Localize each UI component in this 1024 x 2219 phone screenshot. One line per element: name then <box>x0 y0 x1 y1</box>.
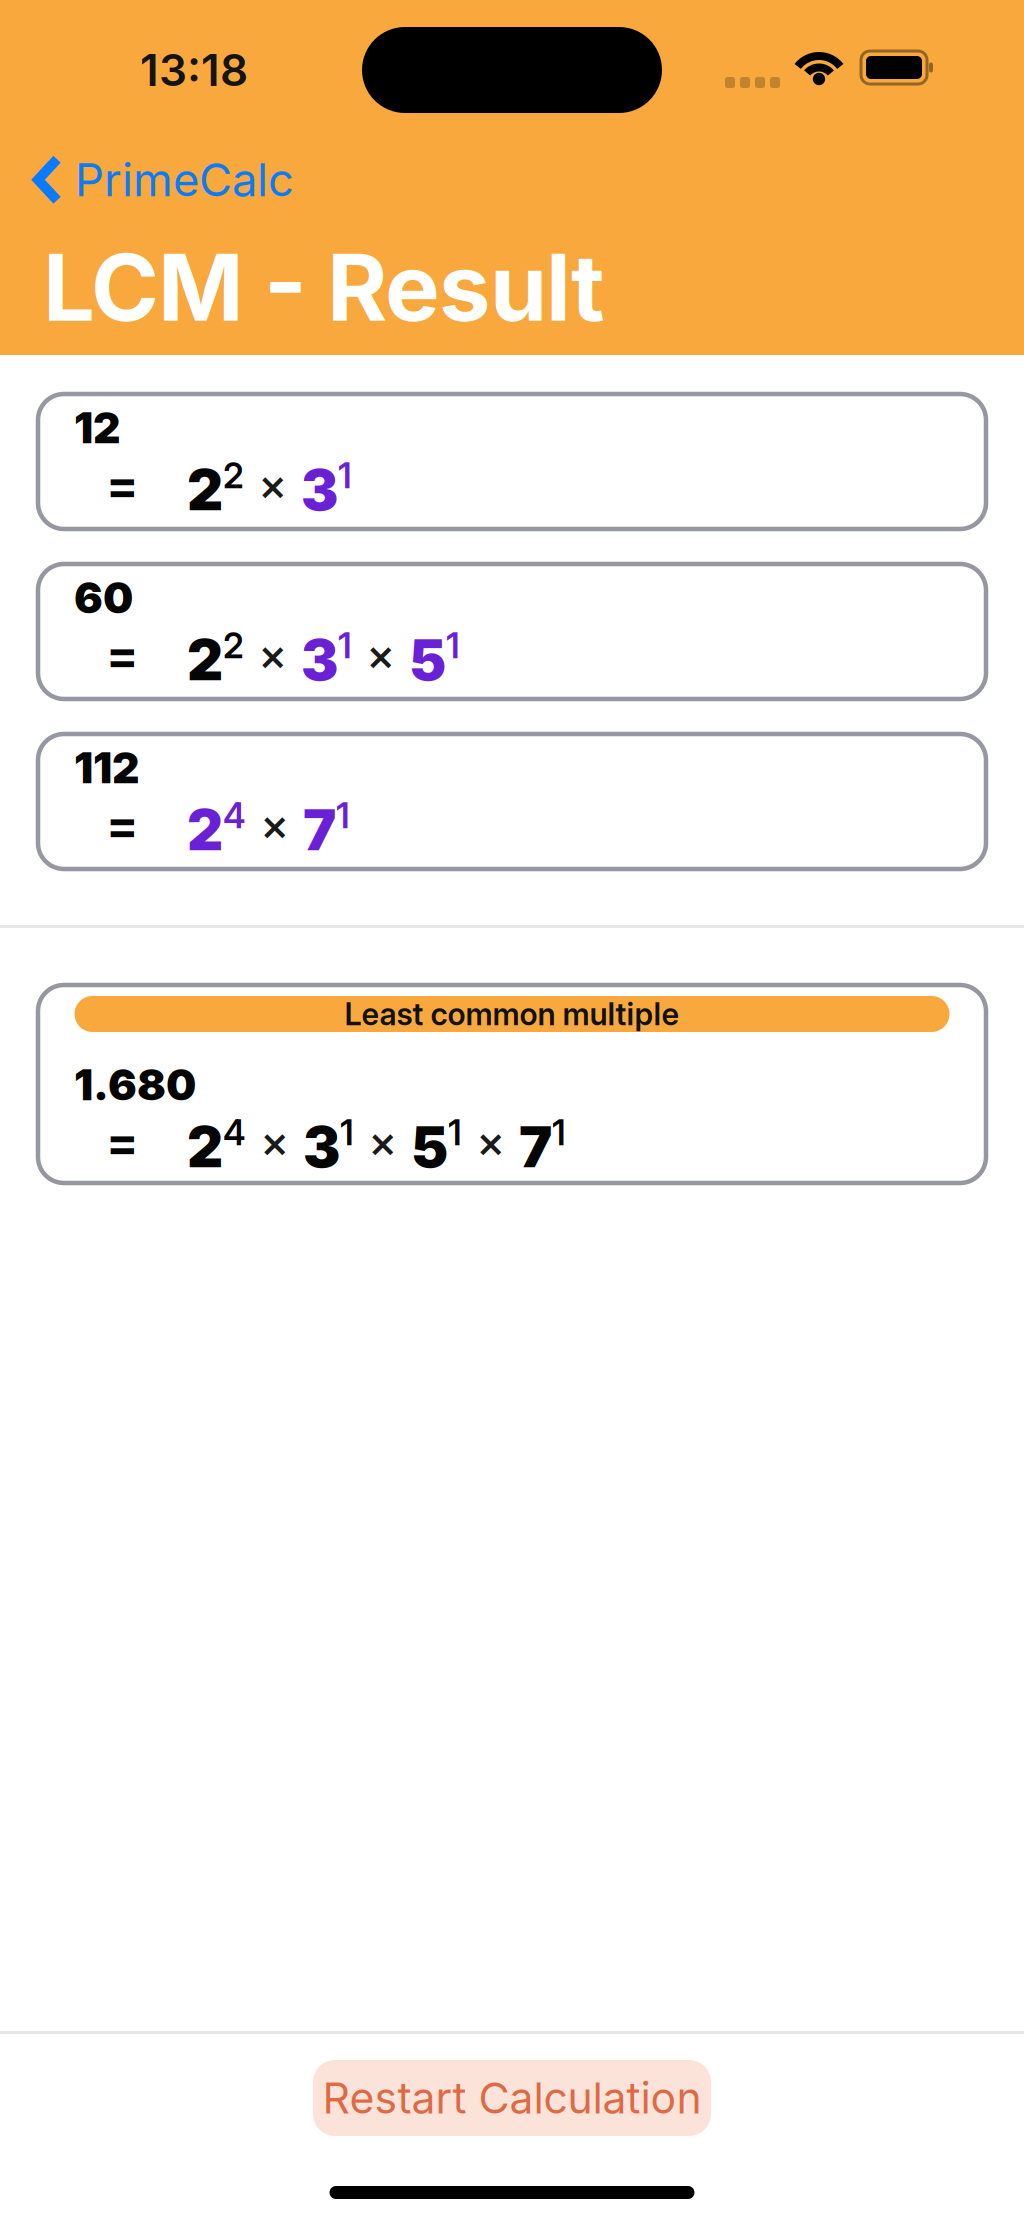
staticText: = <box>106 1114 139 1170</box>
staticText: × <box>258 458 287 510</box>
staticText: 51 <box>411 1112 462 1180</box>
button[interactable]: Restart Calculation <box>313 2060 711 2136</box>
staticText: 1.680 <box>74 1060 196 1110</box>
staticText: × <box>260 798 289 850</box>
staticText: 112 <box>74 743 140 793</box>
staticText: × <box>258 628 287 680</box>
staticText: 31 <box>303 1112 354 1180</box>
staticText: 60 <box>74 573 133 623</box>
button[interactable]: PrimeCalc <box>0 153 294 206</box>
staticText: 22 <box>187 455 244 523</box>
staticText: = <box>106 797 139 853</box>
staticText: 51 <box>409 625 460 693</box>
staticText: LCM - Result <box>43 233 605 341</box>
staticText: 13:18 <box>140 44 248 96</box>
staticText: PrimeCalc <box>75 153 294 206</box>
staticText: 71 <box>303 795 350 863</box>
staticText: 71 <box>519 1112 566 1180</box>
staticText: = <box>106 457 139 513</box>
staticText: × <box>476 1115 505 1167</box>
staticText: 24 <box>187 1112 246 1180</box>
staticText: Restart Calculation <box>322 2073 701 2123</box>
staticText: 22 <box>187 625 244 693</box>
staticText: Least common multiple <box>344 996 679 1032</box>
staticText: 31 <box>301 455 352 523</box>
staticText: 31 <box>301 625 352 693</box>
staticText: × <box>366 628 395 680</box>
staticText: = <box>106 627 139 683</box>
staticText: 12 <box>74 403 121 453</box>
staticText: × <box>260 1115 289 1167</box>
staticText: 24 <box>187 795 246 863</box>
staticText: × <box>368 1115 397 1167</box>
